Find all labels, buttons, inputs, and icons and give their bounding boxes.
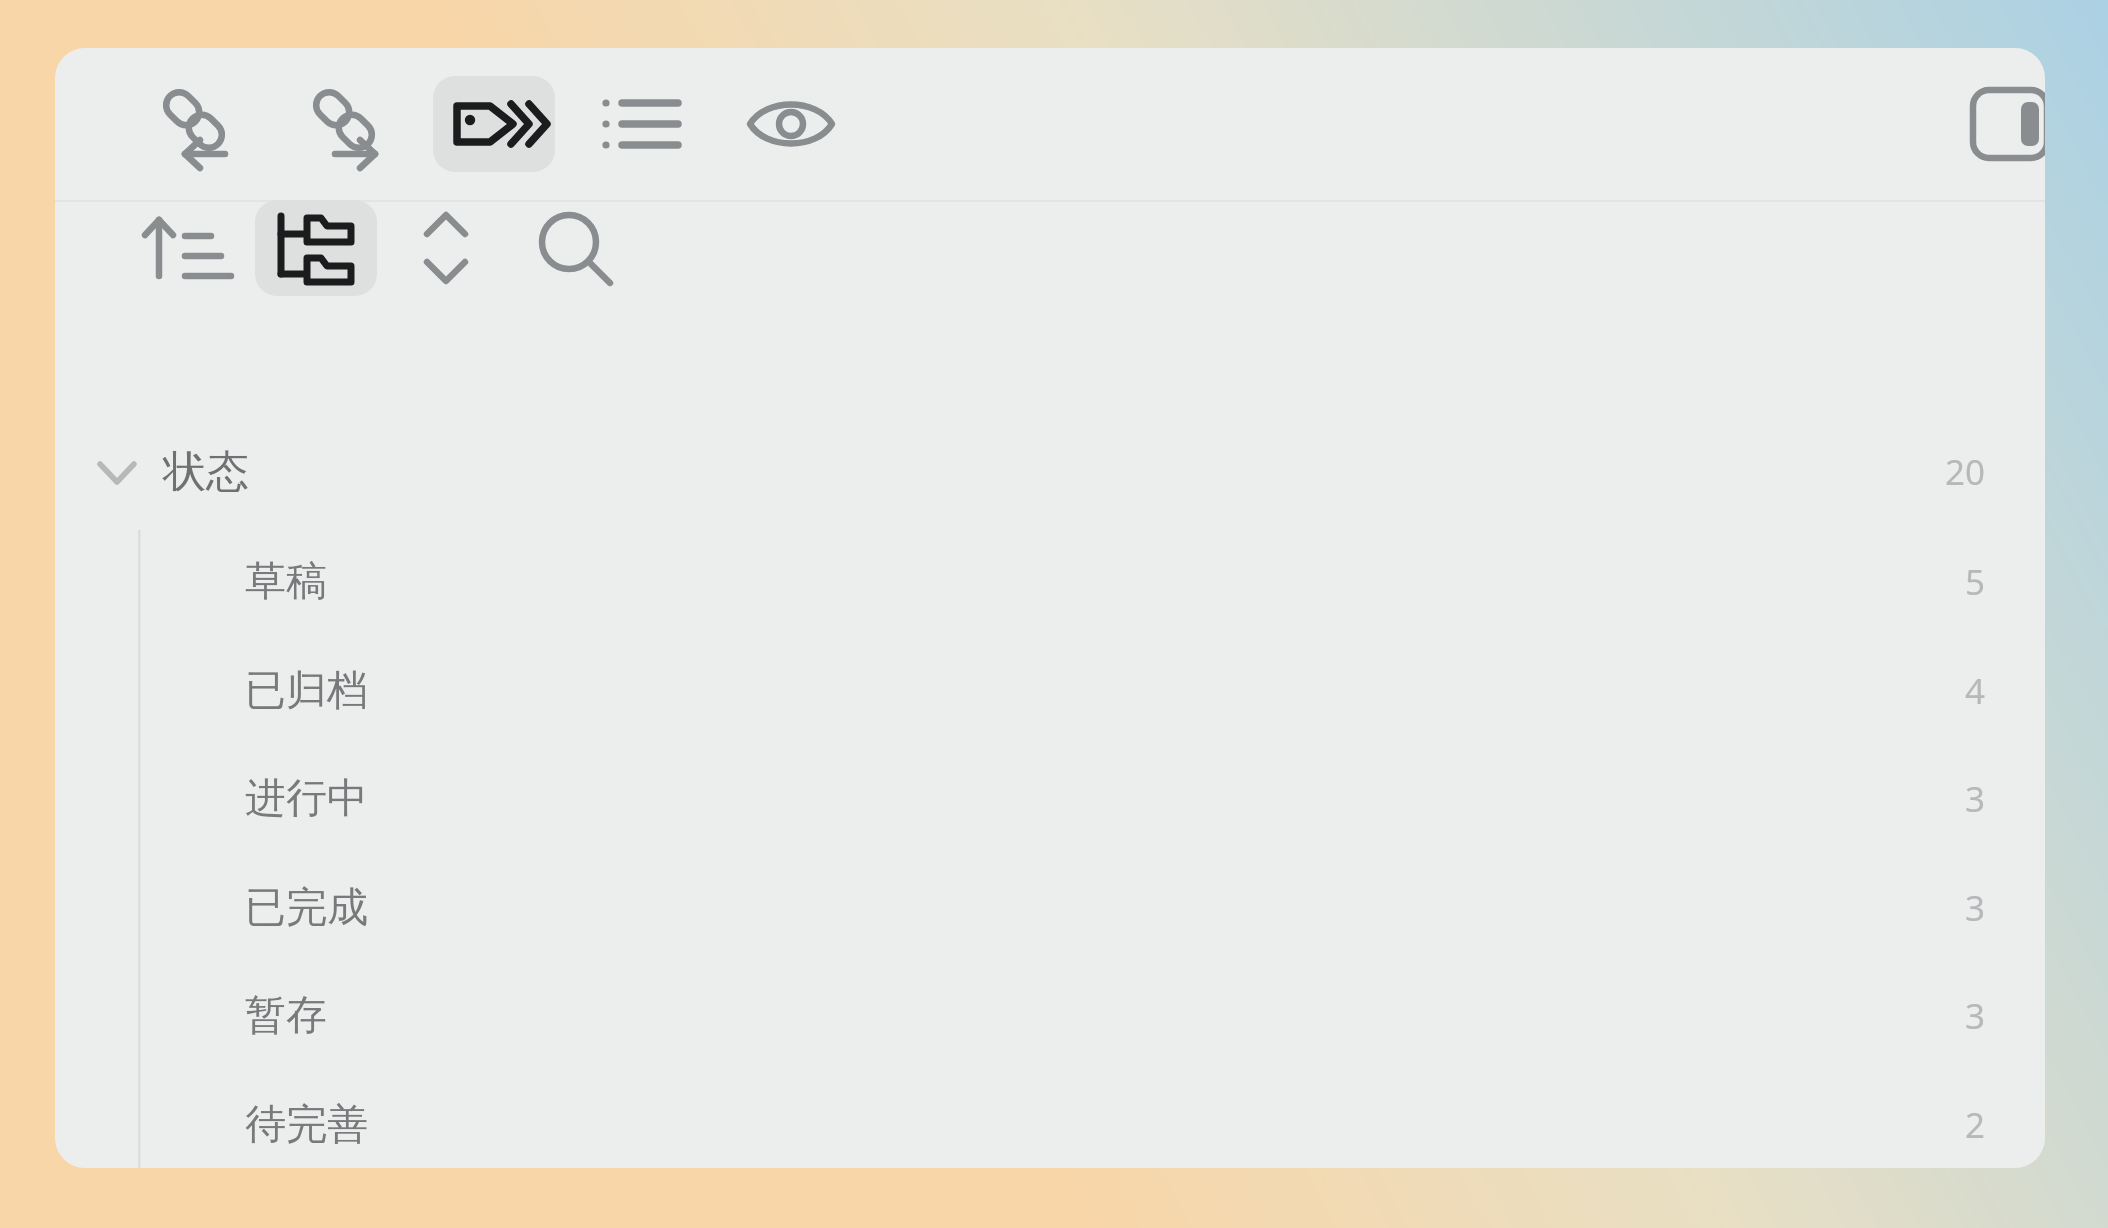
- button[interactable]: 已完成: [55, 860, 2045, 956]
- button[interactable]: 进行中: [55, 751, 2045, 847]
- button[interactable]: 待完善: [55, 1077, 2045, 1168]
- staticText: 已完成: [245, 882, 368, 934]
- staticText: 草稿: [245, 556, 327, 608]
- button[interactable]: Toggle sidebar: [1949, 76, 2045, 172]
- button[interactable]: 已归档: [55, 643, 2045, 739]
- staticText: 4: [1964, 667, 1985, 715]
- button[interactable]: Sort: [127, 200, 249, 296]
- staticText: 3: [1964, 884, 1985, 932]
- button[interactable]: Back links: [133, 76, 255, 172]
- button[interactable]: Expand collapse: [385, 200, 507, 296]
- staticText: 3: [1964, 992, 1985, 1040]
- staticText: 5: [1964, 558, 1985, 606]
- staticText: 暂存: [245, 990, 327, 1042]
- button[interactable]: 暂存: [55, 968, 2045, 1064]
- button[interactable]: Group by folder: [255, 200, 377, 296]
- staticText: 状态: [163, 445, 249, 499]
- button[interactable]: 草稿: [55, 534, 2045, 630]
- button[interactable]: Forward links: [283, 76, 405, 172]
- button[interactable]: Tags: [433, 76, 555, 172]
- button[interactable]: List view: [580, 76, 702, 172]
- staticText: 进行中: [245, 773, 368, 825]
- staticText: 待完善: [245, 1099, 368, 1151]
- staticText: 2: [1964, 1101, 1985, 1149]
- staticText: 3: [1964, 775, 1985, 823]
- button[interactable]: 状态: [55, 420, 2045, 524]
- button[interactable]: Search: [513, 200, 635, 296]
- staticText: 20: [1944, 448, 1985, 496]
- staticText: 已归档: [245, 665, 368, 717]
- button[interactable]: Preview: [730, 76, 852, 172]
